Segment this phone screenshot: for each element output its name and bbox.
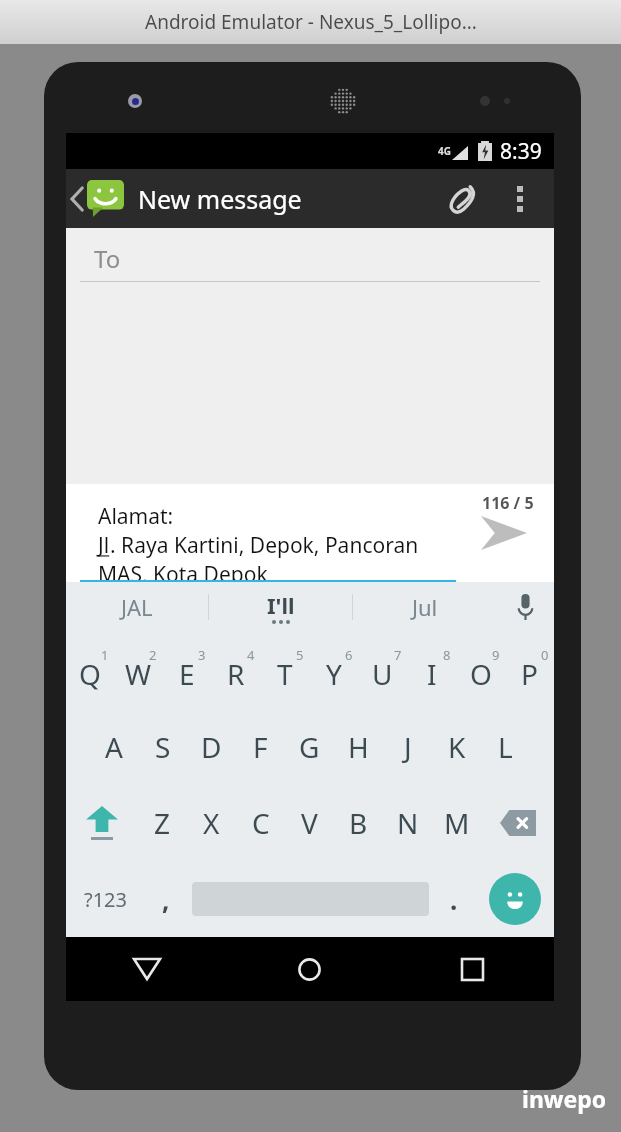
button[interactable]: Recent apps (391, 937, 554, 1001)
button[interactable]: V (285, 785, 334, 861)
staticText: 6 (345, 646, 353, 664)
button[interactable]: B (334, 785, 383, 861)
staticText: V (301, 804, 318, 842)
staticText: 8:39 (500, 137, 542, 166)
staticText: X (203, 804, 220, 842)
staticText: 0 (541, 646, 549, 664)
button[interactable]: O (456, 632, 505, 709)
staticText: N (397, 804, 419, 842)
button[interactable]: Back (66, 937, 228, 1001)
staticText: JAL (121, 592, 153, 622)
button[interactable]: . (432, 861, 476, 937)
staticText: 9 (492, 646, 500, 664)
button[interactable]: Home (228, 937, 391, 1001)
staticText: U (372, 655, 393, 693)
button[interactable]: T (260, 632, 309, 709)
button[interactable]: Backspace (481, 785, 554, 861)
button[interactable]: G (285, 709, 334, 785)
staticText: W (125, 655, 152, 693)
staticText: New message (138, 182, 302, 216)
button[interactable]: Space (188, 861, 432, 937)
staticText: Q (79, 655, 101, 693)
staticText: S (155, 728, 171, 766)
button[interactable]: X (187, 785, 236, 861)
staticText: Y (326, 655, 342, 693)
staticText: 2 (149, 646, 157, 664)
staticText: 5 (296, 646, 304, 664)
staticText: MAS, Kota Depok (98, 560, 268, 582)
button[interactable]: J (383, 709, 432, 785)
button[interactable]: Shift (66, 785, 138, 861)
staticText: Jul (412, 592, 438, 622)
button[interactable]: F (236, 709, 285, 785)
staticText: To (94, 242, 121, 275)
button[interactable]: Jul (353, 582, 496, 632)
button[interactable]: U (358, 632, 407, 709)
button[interactable]: C (236, 785, 285, 861)
button[interactable]: M (432, 785, 481, 861)
button[interactable]: P (505, 632, 554, 709)
staticText: 7 (394, 646, 402, 664)
button[interactable]: S (138, 709, 187, 785)
staticText: F (253, 728, 268, 766)
staticText: B (349, 804, 368, 842)
staticText: . Raya Kartini, Depok, Pancoran (110, 531, 419, 560)
staticText: K (448, 728, 466, 766)
button[interactable]: Send (468, 497, 540, 569)
staticText: Jl (98, 531, 110, 560)
button[interactable]: Y (309, 632, 358, 709)
button[interactable]: E (162, 632, 211, 709)
staticText: I (427, 655, 437, 693)
button[interactable]: More options (492, 171, 548, 227)
button[interactable]: Back (66, 180, 128, 217)
button[interactable]: Q (66, 632, 114, 709)
button[interactable]: Emoji (476, 861, 554, 937)
button[interactable]: ?123 (66, 861, 144, 937)
button[interactable]: , (144, 861, 188, 937)
staticText: L (498, 728, 513, 766)
button[interactable]: Z (138, 785, 187, 861)
button[interactable]: K (432, 709, 481, 785)
staticText: 116 / 5 (482, 492, 534, 514)
staticText: Android Emulator - Nexus_5_Lollipo... (145, 9, 477, 35)
button[interactable]: JAL (66, 582, 208, 632)
staticText: . (450, 882, 458, 917)
staticText: R (227, 655, 245, 693)
staticText: H (348, 728, 369, 766)
staticText: G (299, 728, 320, 766)
staticText: Z (154, 804, 171, 842)
button[interactable]: L (481, 709, 530, 785)
staticText: 1 (101, 646, 109, 664)
staticText: T (277, 655, 293, 693)
staticText: O (470, 655, 492, 693)
staticText: 8 (443, 646, 451, 664)
button[interactable]: H (334, 709, 383, 785)
staticText: 4G (438, 144, 451, 158)
button[interactable]: I'll (209, 582, 352, 632)
staticText: 4 (247, 646, 255, 664)
button[interactable]: I (407, 632, 456, 709)
staticText: A (105, 728, 123, 766)
staticText: D (201, 728, 222, 766)
staticText: 3 (198, 646, 206, 664)
staticText: inwepo (522, 1083, 607, 1114)
staticText: C (252, 804, 270, 842)
staticText: I'll (267, 590, 295, 620)
staticText: M (444, 804, 470, 842)
button[interactable]: D (187, 709, 236, 785)
staticText: J (404, 728, 412, 766)
staticText: P (521, 655, 538, 693)
button[interactable]: R (211, 632, 260, 709)
button[interactable]: Attach (434, 170, 492, 228)
staticText: , (162, 882, 170, 917)
button[interactable]: To (66, 228, 554, 289)
staticText: ?123 (84, 886, 127, 913)
staticText: Alamat: (98, 502, 174, 531)
button[interactable]: W (114, 632, 162, 709)
staticText: E (179, 655, 195, 693)
button[interactable]: A (89, 709, 138, 785)
button[interactable]: Voice input (496, 582, 554, 632)
button[interactable]: N (383, 785, 432, 861)
